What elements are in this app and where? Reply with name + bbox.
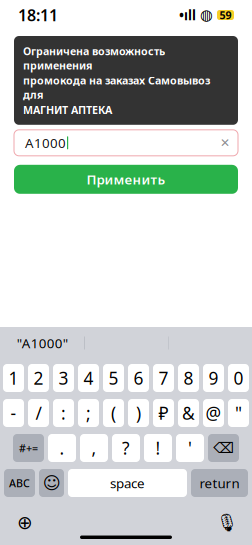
staticText: 59 [219,8,231,22]
staticText: #+= [19,441,38,455]
button[interactable]: #+= [13,434,44,462]
staticText: 8 [183,366,193,389]
button[interactable]: Dictation [210,507,244,537]
staticText: ⌫ [213,440,234,456]
staticText: 6 [133,366,143,389]
staticText: 3 [58,366,68,389]
staticText: @ [205,401,221,424]
staticText: ◍ [200,7,213,23]
staticText: ? [122,436,130,459]
button[interactable]: ) [128,399,149,427]
staticText: 7 [158,366,168,389]
button[interactable]: Delete [208,434,239,462]
staticText: . [59,436,64,459]
button[interactable]: : [53,399,74,427]
button[interactable]: ! [144,434,172,462]
staticText: 🎙 [216,513,238,532]
staticText: 9 [208,366,218,389]
button[interactable]: . [48,434,76,462]
staticText: ) [136,401,141,424]
staticText: space [110,474,145,492]
button[interactable]: Применить [14,165,238,194]
button[interactable]: & [178,399,199,427]
staticText: промокода на заказах Самовывоз для [23,73,210,102]
button[interactable]: ' [176,434,204,462]
button[interactable]: ? [112,434,140,462]
staticText: 4 [83,366,93,389]
staticText: return [199,474,239,492]
staticText: " [235,401,242,424]
button[interactable]: 0 [228,364,249,392]
button[interactable]: Emoji [39,469,64,497]
button[interactable]: space [68,469,187,497]
staticText: - [10,401,16,424]
button[interactable]: ( [103,399,124,427]
button[interactable]: "A1000" [0,330,84,356]
staticText: Ограничена возможность применения [23,44,165,72]
button[interactable]: 9 [203,364,224,392]
button[interactable]: 6 [128,364,149,392]
staticText: ABC [9,476,30,490]
staticText: Применить [86,170,165,188]
button[interactable]: - [3,399,24,427]
button[interactable]: 2 [28,364,49,392]
staticText: ⊕ [17,512,33,533]
staticText: A1000 [25,134,66,152]
button[interactable]: 8 [178,364,199,392]
button[interactable]: 1 [3,364,24,392]
staticText: ! [155,436,160,459]
button[interactable]: ₽ [153,399,174,427]
staticText: & [182,401,195,424]
staticText: МАГНИТ АПТЕКА [23,103,112,117]
staticText: ; [86,401,91,424]
button[interactable]: " [228,399,249,427]
button[interactable]: 5 [103,364,124,392]
button[interactable]: / [28,399,49,427]
button[interactable]: 4 [78,364,99,392]
staticText: ✕ [220,136,230,150]
staticText: 0 [233,366,243,389]
button[interactable]: 7 [153,364,174,392]
button[interactable]: , [80,434,108,462]
staticText: , [91,436,96,459]
button[interactable]: return [191,469,248,497]
staticText: ( [111,401,116,424]
staticText: "A1000" [17,334,68,352]
staticText: 1 [8,366,18,389]
staticText: / [35,401,41,424]
button[interactable]: 3 [53,364,74,392]
staticText: ₽ [158,401,168,424]
staticText: ' [188,436,192,459]
staticText: •ıll [179,6,196,24]
staticText: ☺ [42,473,60,493]
button[interactable]: @ [203,399,224,427]
staticText: 5 [108,366,118,389]
button[interactable]: Change keyboard language [8,507,42,537]
staticText: 18:11 [18,4,58,26]
staticText: 2 [33,366,43,389]
button[interactable]: ABC [4,469,35,497]
button[interactable]: Clear text [215,131,235,155]
button[interactable]: ; [78,399,99,427]
staticText: : [61,401,66,424]
